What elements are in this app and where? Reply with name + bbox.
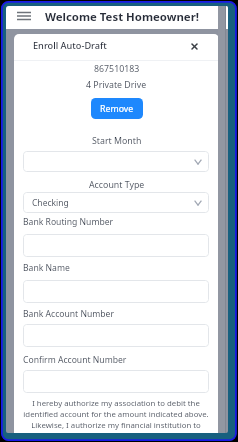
button[interactable] — [23, 370, 209, 393]
staticText: Account Type — [89, 179, 145, 191]
staticText: Welcome Test Homeowner! — [45, 9, 199, 25]
staticText: Enroll Auto-Draft — [33, 39, 107, 52]
staticText: Bank Name — [23, 262, 70, 274]
staticText: Confirm Account Number — [23, 354, 127, 366]
button[interactable] — [23, 280, 209, 303]
button[interactable] — [23, 234, 209, 257]
staticText: Bank Account Number — [23, 308, 114, 320]
staticText: 867510183 — [94, 63, 140, 75]
button[interactable]: Close — [186, 38, 203, 55]
button[interactable]: Checking — [23, 192, 209, 213]
staticText: Remove — [100, 103, 134, 115]
button[interactable]: Remove — [91, 98, 143, 119]
staticText: Start Month — [92, 135, 142, 147]
staticText: 4 Private Drive — [86, 79, 147, 91]
button[interactable] — [23, 324, 209, 347]
button[interactable]: Open navigation menu — [15, 8, 33, 22]
staticText: I hereby authorize my association to deb… — [23, 398, 209, 431]
button[interactable] — [23, 151, 209, 172]
staticText: Checking — [32, 197, 69, 209]
staticText: Bank Routing Number — [23, 216, 114, 228]
